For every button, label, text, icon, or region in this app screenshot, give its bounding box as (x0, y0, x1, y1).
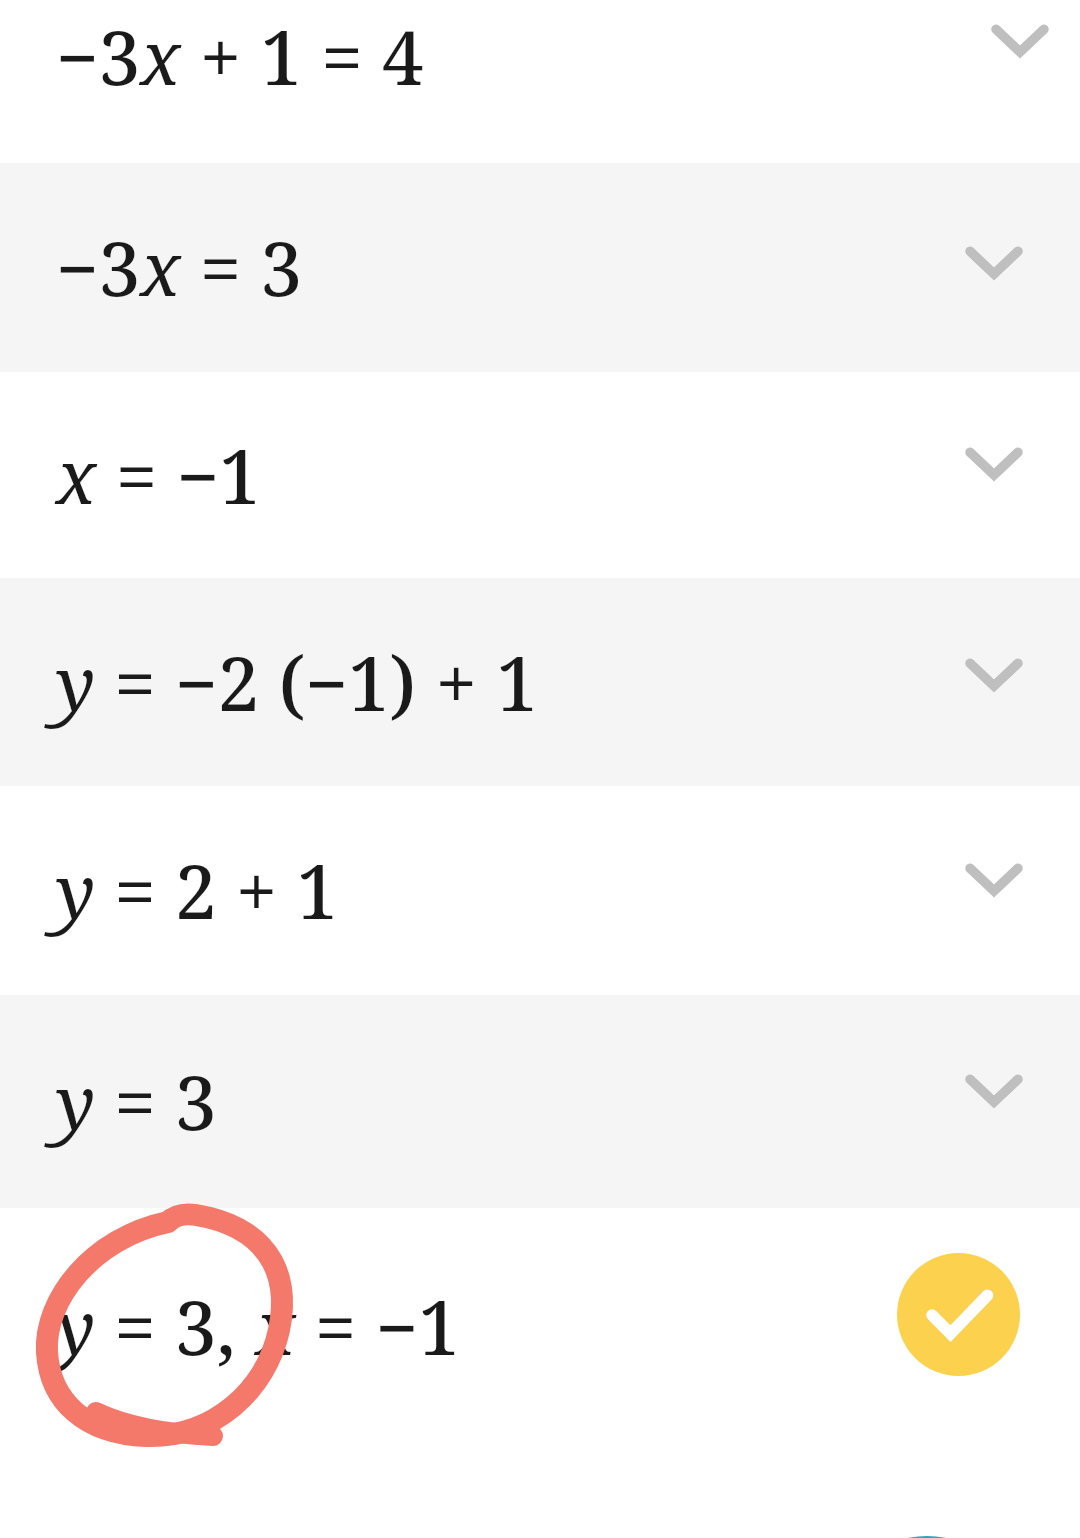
staticText: y = 3, x = −1 (56, 1276, 460, 1377)
button[interactable]: Expand step (960, 843, 1028, 911)
button[interactable]: Expand step (960, 638, 1028, 706)
staticText: y = −2 (−1) + 1 (56, 632, 538, 733)
button[interactable]: y = 3 (0, 995, 1080, 1208)
staticText: −3x + 1 = 4 (56, 6, 424, 107)
button[interactable]: y = 3, x = −1 (0, 1208, 1080, 1538)
button[interactable]: −3x + 1 = 4 (0, 0, 1080, 163)
button[interactable]: −3x = 3 (0, 163, 1080, 372)
button[interactable]: Expand step (960, 427, 1028, 495)
button[interactable]: Correct answer (897, 1253, 1020, 1376)
button[interactable]: Expand step (960, 1054, 1028, 1122)
staticText: x = −1 (56, 425, 261, 526)
button[interactable]: Expand step (960, 226, 1028, 294)
staticText: y = 2 + 1 (56, 840, 339, 941)
button[interactable]: y = 2 + 1 (0, 786, 1080, 995)
button[interactable]: x = −1 (0, 372, 1080, 578)
staticText: y = 3 (56, 1051, 217, 1152)
button[interactable]: Expand step (986, 4, 1054, 72)
staticText: −3x = 3 (56, 217, 303, 318)
button[interactable]: y = −2 (−1) + 1 (0, 578, 1080, 786)
